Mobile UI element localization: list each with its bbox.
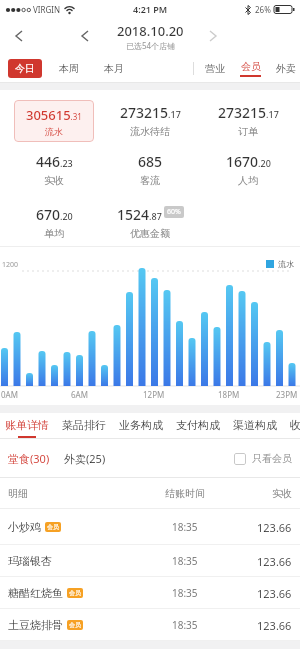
staticText: 0AM bbox=[1, 389, 18, 400]
staticText: 营业 bbox=[205, 62, 225, 75]
staticText: 渠道构成 bbox=[233, 418, 277, 432]
button[interactable]: 收款构成 bbox=[290, 418, 300, 432]
staticText: 18PM bbox=[218, 389, 240, 400]
staticText: 305615.31 bbox=[26, 106, 82, 124]
staticText: 123.66 bbox=[257, 618, 292, 633]
staticText: 支付构成 bbox=[176, 418, 220, 432]
staticText: 12PM bbox=[143, 389, 165, 400]
button[interactable]: 营业 bbox=[203, 60, 227, 77]
button[interactable]: 支付构成 bbox=[176, 418, 220, 432]
staticText: 273215.17 bbox=[120, 103, 181, 122]
button[interactable]: 外卖 bbox=[274, 60, 298, 77]
staticText: 18:35 bbox=[172, 554, 198, 568]
staticText: 446.23 bbox=[36, 152, 73, 171]
button[interactable]: 土豆烧排骨 bbox=[0, 609, 300, 641]
staticText: 670.20 bbox=[36, 205, 73, 224]
staticText: 会员 bbox=[241, 60, 261, 73]
button[interactable]: 堂食(30) bbox=[8, 451, 50, 466]
button[interactable]: 业务构成 bbox=[119, 418, 163, 432]
staticText: 685 bbox=[138, 152, 163, 171]
staticText: 账单详情 bbox=[5, 418, 49, 432]
button[interactable]: 小炒鸡 bbox=[0, 509, 300, 545]
staticText: 1200 bbox=[2, 260, 19, 270]
staticText: 18:35 bbox=[172, 586, 198, 600]
staticText: 4:21 PM bbox=[133, 3, 168, 15]
staticText: 60% bbox=[167, 207, 181, 217]
staticText: 2018.10.20 bbox=[117, 22, 184, 40]
staticText: 本月 bbox=[104, 62, 124, 75]
staticText: 人均 bbox=[238, 174, 258, 187]
staticText: 会员 bbox=[69, 589, 81, 597]
staticText: 外卖 bbox=[276, 62, 296, 75]
button[interactable] bbox=[80, 29, 90, 43]
staticText: 客流 bbox=[140, 174, 160, 187]
staticText: 堂食(30) bbox=[8, 451, 50, 466]
staticText: 只看会员 bbox=[252, 452, 292, 465]
button[interactable]: 今日 bbox=[8, 59, 42, 78]
staticText: 土豆烧排骨 bbox=[8, 618, 63, 632]
staticText: 123.66 bbox=[257, 586, 292, 601]
button[interactable]: 菜品排行 bbox=[62, 418, 106, 432]
staticText: 流水待结 bbox=[130, 125, 170, 138]
button[interactable]: 外卖(25) bbox=[64, 451, 106, 466]
staticText: 会员 bbox=[69, 621, 81, 629]
button[interactable]: 玛瑙银杏 bbox=[0, 545, 300, 577]
staticText: 1524.87 bbox=[117, 205, 162, 224]
staticText: 明细 bbox=[8, 487, 28, 500]
staticText: 业务构成 bbox=[119, 418, 163, 432]
button[interactable]: 渠道构成 bbox=[233, 418, 277, 432]
staticText: 流水 bbox=[45, 126, 63, 137]
staticText: 123.66 bbox=[257, 520, 292, 535]
button[interactable]: 本月 bbox=[104, 62, 124, 75]
staticText: 本周 bbox=[59, 62, 79, 75]
staticText: 18:35 bbox=[172, 618, 198, 632]
staticText: 18:35 bbox=[172, 520, 198, 534]
staticText: 会员 bbox=[47, 523, 59, 531]
button[interactable]: 糖醋红烧鱼 bbox=[0, 577, 300, 609]
staticText: 6AM bbox=[71, 389, 88, 400]
staticText: 糖醋红烧鱼 bbox=[8, 586, 63, 600]
staticText: 订单 bbox=[238, 125, 258, 138]
staticText: 菜品排行 bbox=[62, 418, 106, 432]
staticText: 123.66 bbox=[257, 554, 292, 569]
staticText: 今日 bbox=[15, 62, 35, 75]
button[interactable]: 只看会员 bbox=[234, 452, 292, 465]
staticText: 单均 bbox=[44, 227, 64, 240]
staticText: 小炒鸡 bbox=[8, 520, 41, 534]
staticText: 外卖(25) bbox=[64, 451, 106, 466]
staticText: 273215.17 bbox=[218, 103, 279, 122]
button[interactable] bbox=[208, 29, 218, 43]
staticText: 实收 bbox=[44, 174, 64, 187]
staticText: 已选54个店铺 bbox=[126, 40, 176, 51]
staticText: 实收 bbox=[272, 487, 292, 500]
staticText: 23PM bbox=[276, 389, 298, 400]
staticText: 玛瑙银杏 bbox=[8, 554, 52, 568]
button[interactable] bbox=[14, 29, 24, 43]
staticText: 1670.20 bbox=[226, 152, 271, 171]
staticText: VIRGIN bbox=[33, 4, 61, 15]
staticText: 26% bbox=[255, 4, 271, 15]
button[interactable]: 本周 bbox=[59, 62, 79, 75]
staticText: 收款构成 bbox=[290, 418, 300, 432]
button[interactable]: 会员 bbox=[240, 60, 261, 77]
button[interactable]: 305615.31 bbox=[14, 100, 94, 142]
staticText: 优惠金额 bbox=[130, 227, 170, 240]
staticText: 结账时间 bbox=[165, 487, 205, 500]
staticText: 流水 bbox=[278, 259, 294, 269]
button[interactable]: 账单详情 bbox=[5, 418, 49, 438]
